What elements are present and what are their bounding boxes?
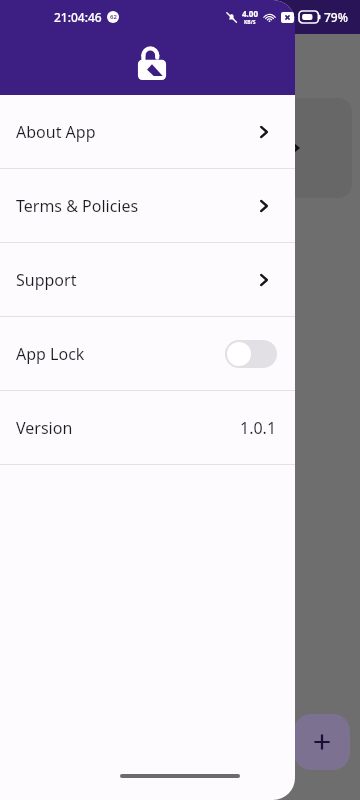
staticText: 4.00	[242, 8, 258, 19]
staticText: 21:04:46	[54, 9, 102, 25]
staticText: KB/S	[244, 19, 256, 26]
staticText: Support	[16, 269, 77, 291]
other: Silent mode	[225, 11, 238, 24]
staticText: Version	[16, 417, 73, 439]
staticText: 1.0.1	[240, 417, 277, 439]
button[interactable]: Open	[236, 98, 352, 198]
staticText: 79%	[324, 9, 348, 25]
staticText: Terms & Policies	[16, 195, 139, 217]
other: Open	[283, 137, 305, 159]
button[interactable]: Terms & Policies	[0, 169, 295, 242]
other: App logo	[131, 43, 173, 85]
staticText: App Lock	[16, 343, 85, 365]
button[interactable]: Add	[294, 714, 350, 770]
other: Battery 79 percent	[299, 11, 321, 23]
staticText: 62	[110, 13, 117, 21]
button[interactable]: About App	[0, 95, 295, 168]
button[interactable]: Support	[0, 243, 295, 316]
staticText: About App	[16, 121, 96, 143]
button[interactable]: Version	[0, 391, 295, 464]
button[interactable]: App Lock	[0, 317, 295, 390]
other: Wi-Fi	[263, 11, 276, 24]
